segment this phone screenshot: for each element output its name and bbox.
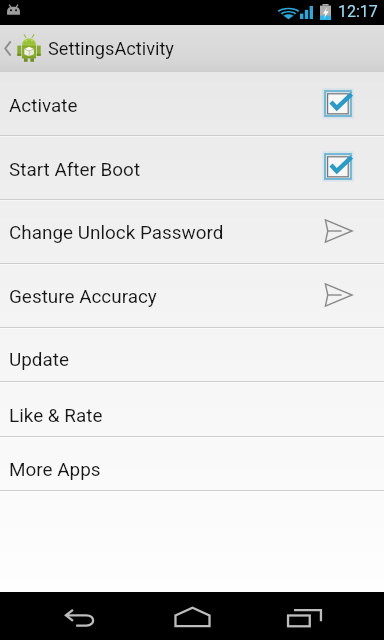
- button[interactable]: SettingsActivity: [0, 25, 384, 72]
- button[interactable]: Change Unlock Password: [0, 199, 384, 263]
- button[interactable]: Recent apps: [248, 592, 360, 640]
- staticText: Gesture Accuracy: [9, 285, 157, 307]
- staticText: Like & Rate: [9, 404, 103, 426]
- staticText: Update: [9, 348, 69, 370]
- button[interactable]: Like & Rate: [0, 381, 384, 436]
- staticText: SettingsActivity: [48, 38, 174, 59]
- button[interactable]: Back: [24, 592, 136, 640]
- button[interactable]: Update: [0, 327, 384, 381]
- staticText: More Apps: [9, 458, 101, 480]
- button[interactable]: Activate: [0, 72, 384, 135]
- staticText: 12:17: [338, 2, 378, 21]
- button[interactable]: Home: [136, 592, 248, 640]
- staticText: Activate: [9, 94, 78, 116]
- button[interactable]: More Apps: [0, 436, 384, 490]
- button[interactable]: Start After Boot: [0, 135, 384, 199]
- staticText: Change Unlock Password: [9, 221, 224, 243]
- staticText: Start After Boot: [9, 158, 141, 180]
- button[interactable]: Gesture Accuracy: [0, 263, 384, 327]
